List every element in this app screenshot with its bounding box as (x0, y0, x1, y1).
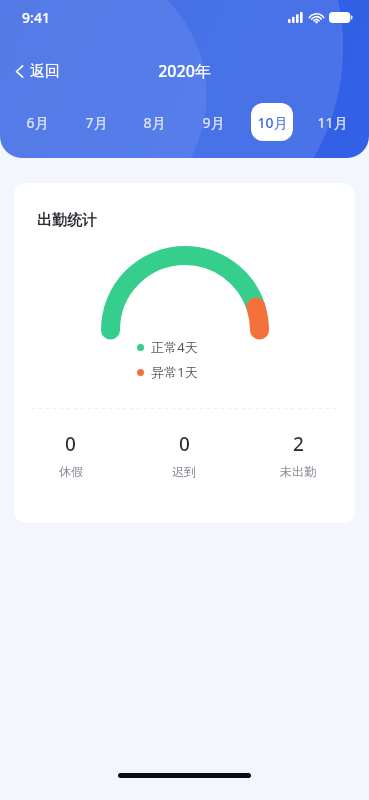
staticText: 0 (65, 431, 76, 457)
staticText: 2020年 (158, 60, 211, 82)
staticText: 0 (179, 431, 190, 457)
button[interactable]: 9月 (193, 103, 233, 141)
staticText: 迟到 (172, 464, 196, 479)
staticText: 返回 (30, 62, 60, 81)
button[interactable]: 异常1天 (137, 363, 233, 381)
staticText: 异常1天 (151, 363, 198, 381)
staticText: 9:41 (22, 8, 50, 27)
button[interactable]: 0 (14, 431, 127, 479)
button[interactable]: 0 (127, 431, 241, 479)
button[interactable]: 8月 (134, 103, 174, 141)
staticText: 未出勤 (280, 464, 316, 479)
button[interactable]: 2 (241, 431, 355, 479)
staticText: 8月 (143, 113, 166, 132)
button[interactable]: 出勤统计 (14, 183, 355, 523)
button[interactable]: 11月 (312, 103, 352, 141)
staticText: 9月 (202, 113, 225, 132)
staticText: 6月 (26, 113, 49, 132)
staticText: 正常4天 (151, 338, 198, 356)
button[interactable]: 正常4天 (137, 338, 233, 356)
staticText: 出勤统计 (37, 211, 97, 230)
button[interactable]: 10月 (251, 103, 293, 141)
staticText: 休假 (59, 464, 83, 479)
staticText: 7月 (85, 113, 108, 132)
button[interactable]: 返回 (10, 58, 65, 85)
staticText: 10月 (257, 113, 288, 132)
staticText: 2 (293, 431, 304, 457)
button[interactable]: 7月 (76, 103, 116, 141)
button[interactable]: 6月 (17, 103, 57, 141)
staticText: 11月 (317, 113, 348, 132)
